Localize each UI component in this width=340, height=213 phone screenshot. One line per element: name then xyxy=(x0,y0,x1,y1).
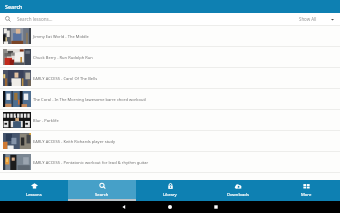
button[interactable]: EARLY ACCESS - Carol Of The Bells xyxy=(0,68,340,88)
staticText: Jimmy Eat World - The Middle xyxy=(33,34,89,39)
button[interactable]: Recents xyxy=(211,202,221,212)
staticText: EARLY ACCESS - Keith Richards player stu… xyxy=(33,139,116,144)
staticText: Search xyxy=(95,192,109,198)
button[interactable]: EARLY ACCESS - Keith Richards player stu… xyxy=(0,131,340,151)
staticText: Lessons xyxy=(26,192,42,198)
staticText: Chuck Berry - Run Rudolph Run xyxy=(33,55,93,60)
button[interactable]: Library xyxy=(136,180,204,201)
other: Search xyxy=(5,16,11,22)
staticText: The Coral - In The Morning (awesome barr… xyxy=(33,97,147,102)
staticText: Blur - Parklife xyxy=(33,118,59,123)
button[interactable]: Chuck Berry - Run Rudolph Run xyxy=(0,47,340,67)
button[interactable]: Jimmy Eat World - The Middle xyxy=(0,26,340,46)
button[interactable]: Home xyxy=(165,202,175,212)
staticText: Downloads xyxy=(227,192,249,198)
button[interactable]: More xyxy=(272,180,340,201)
staticText: EARLY ACCESS - Pentatonic workout for le… xyxy=(33,160,149,165)
staticText: Show All xyxy=(299,16,317,22)
button[interactable]: The Coral - In The Morning (awesome barr… xyxy=(0,89,340,109)
staticText: Search lessons... xyxy=(17,16,53,22)
button[interactable]: Back xyxy=(119,202,129,212)
button[interactable]: Lessons xyxy=(0,180,68,201)
staticText: More xyxy=(301,192,312,198)
button[interactable]: Search xyxy=(0,13,340,25)
button[interactable]: Blur - Parklife xyxy=(0,110,340,130)
staticText: EARLY ACCESS - Carol Of The Bells xyxy=(33,76,98,81)
staticText: Search xyxy=(5,3,23,10)
other: Show All filter xyxy=(331,18,334,21)
button[interactable]: Search xyxy=(68,180,136,201)
staticText: Library xyxy=(163,192,177,198)
button[interactable]: Downloads xyxy=(204,180,272,201)
button[interactable]: EARLY ACCESS - Pentatonic workout for le… xyxy=(0,152,340,172)
